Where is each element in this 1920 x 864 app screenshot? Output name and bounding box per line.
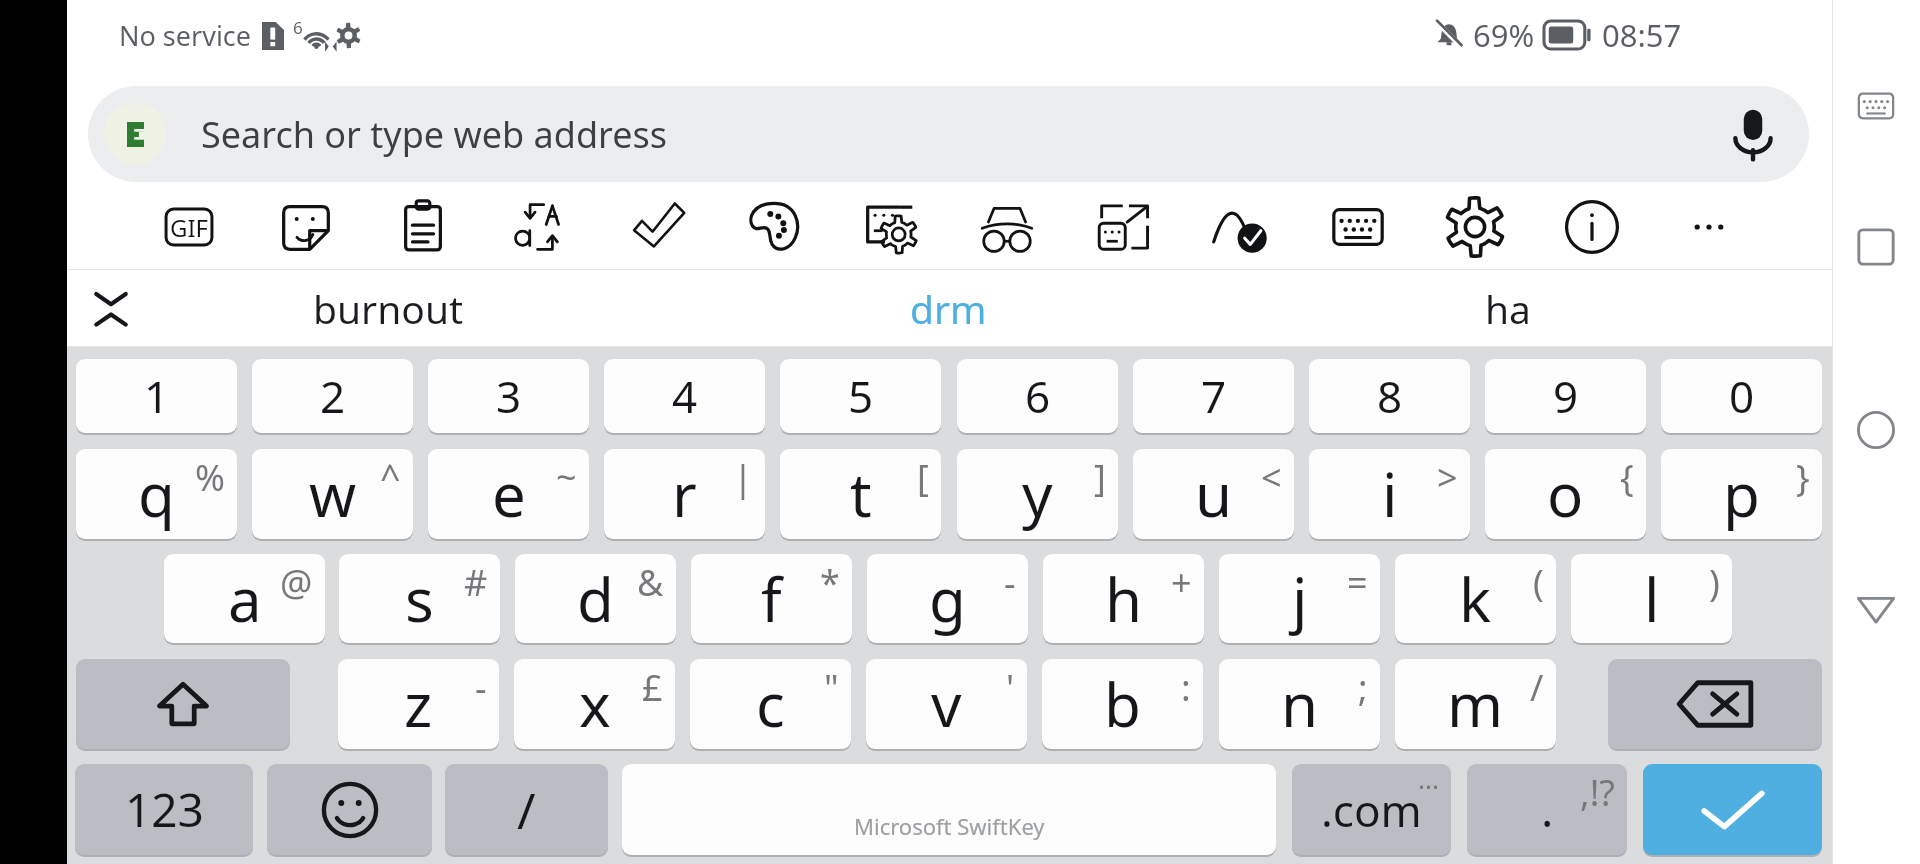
- button[interactable]: 6: [957, 359, 1118, 433]
- staticText: 123: [125, 778, 204, 841]
- staticText: ;: [1358, 663, 1368, 712]
- button[interactable]: Clipboard: [386, 183, 460, 270]
- button[interactable]: Translate: [503, 183, 577, 270]
- staticText: &: [637, 558, 664, 607]
- button[interactable]: o: [1485, 449, 1646, 539]
- button[interactable]: 5: [780, 359, 941, 433]
- button[interactable]: Stickers: [269, 183, 343, 270]
- button[interactable]: 7: [1133, 359, 1294, 433]
- button[interactable]: Collapse suggestions: [75, 270, 147, 347]
- button[interactable]: /: [445, 764, 608, 855]
- staticText: ): [1709, 558, 1720, 607]
- staticText: ···: [1418, 768, 1439, 803]
- staticText: -: [475, 663, 487, 712]
- button[interactable]: 0: [1661, 359, 1822, 433]
- button[interactable]: Handwriting: [1204, 183, 1278, 270]
- button[interactable]: m: [1395, 659, 1556, 749]
- button[interactable]: 1: [76, 359, 237, 433]
- staticText: l: [1644, 558, 1660, 640]
- staticText: burnout: [313, 282, 464, 335]
- button[interactable]: g: [867, 554, 1028, 643]
- button[interactable]: v: [866, 659, 1027, 749]
- button[interactable]: Search or type web address: [88, 86, 1809, 182]
- button[interactable]: More options: [1672, 183, 1746, 270]
- staticText: +: [1171, 558, 1192, 607]
- button[interactable]: Settings: [1438, 183, 1512, 270]
- button[interactable]: x: [514, 659, 675, 749]
- button[interactable]: p: [1661, 449, 1822, 539]
- staticText: d: [577, 558, 614, 640]
- staticText: w: [309, 453, 357, 535]
- staticText: 9: [1553, 366, 1579, 426]
- button[interactable]: 2: [252, 359, 413, 433]
- button[interactable]: r: [604, 449, 765, 539]
- button[interactable]: t: [780, 449, 941, 539]
- button[interactable]: 123: [75, 764, 253, 855]
- button[interactable]: .: [1467, 764, 1627, 855]
- button[interactable]: l: [1571, 554, 1732, 643]
- staticText: :: [1181, 663, 1191, 712]
- button[interactable]: n: [1219, 659, 1380, 749]
- staticText: /: [517, 776, 536, 844]
- button[interactable]: y: [957, 449, 1118, 539]
- button[interactable]: drm: [668, 270, 1228, 347]
- button[interactable]: u: [1133, 449, 1294, 539]
- button[interactable]: d: [515, 554, 676, 643]
- button[interactable]: Recents: [1839, 210, 1913, 284]
- staticText: m: [1447, 663, 1504, 745]
- staticText: r: [672, 453, 697, 535]
- staticText: 7: [1201, 366, 1227, 426]
- button[interactable]: 8: [1309, 359, 1470, 433]
- button[interactable]: Resize keyboard: [1087, 183, 1161, 270]
- staticText: 08:57: [1602, 14, 1682, 56]
- button[interactable]: h: [1043, 554, 1204, 643]
- button[interactable]: Space: [622, 764, 1276, 855]
- button[interactable]: Keyboard: [1839, 69, 1913, 143]
- button[interactable]: GIF: [152, 183, 226, 270]
- button[interactable]: z: [338, 659, 499, 749]
- button[interactable]: Shift: [76, 659, 290, 749]
- button[interactable]: k: [1395, 554, 1556, 643]
- button[interactable]: Emoji: [267, 764, 432, 855]
- button[interactable]: j: [1219, 554, 1380, 643]
- button[interactable]: 3: [428, 359, 589, 433]
- button[interactable]: a: [164, 554, 325, 643]
- staticText: <: [1261, 453, 1282, 502]
- button[interactable]: s: [339, 554, 500, 643]
- staticText: ^: [380, 453, 401, 502]
- button[interactable]: Voice search: [1723, 104, 1783, 164]
- staticText: ": [824, 663, 839, 712]
- button[interactable]: burnout: [108, 270, 668, 347]
- button[interactable]: 4: [604, 359, 765, 433]
- button[interactable]: i: [1309, 449, 1470, 539]
- staticText: .com: [1321, 780, 1422, 840]
- staticText: n: [1281, 663, 1319, 745]
- button[interactable]: .com: [1292, 764, 1451, 855]
- button[interactable]: e: [428, 449, 589, 539]
- staticText: GIF: [170, 211, 209, 244]
- button[interactable]: ha: [1228, 270, 1788, 347]
- button[interactable]: Theme: [737, 183, 811, 270]
- button[interactable]: Tasks: [620, 183, 694, 270]
- button[interactable]: Incognito: [970, 183, 1044, 270]
- staticText: £: [642, 663, 663, 712]
- staticText: ~: [556, 453, 577, 502]
- button[interactable]: Backspace: [1608, 659, 1822, 749]
- button[interactable]: Toolbox: [853, 183, 927, 270]
- staticText: c: [756, 663, 785, 745]
- button[interactable]: Home: [1839, 393, 1913, 467]
- button[interactable]: w: [252, 449, 413, 539]
- staticText: [: [917, 453, 929, 502]
- button[interactable]: Enter: [1643, 764, 1822, 855]
- button[interactable]: q: [76, 449, 237, 539]
- button[interactable]: c: [690, 659, 851, 749]
- button[interactable]: 9: [1485, 359, 1646, 433]
- button[interactable]: f: [691, 554, 852, 643]
- button[interactable]: Info: [1555, 183, 1629, 270]
- button[interactable]: Back: [1839, 571, 1913, 645]
- staticText: |: [733, 453, 753, 502]
- staticText: s: [405, 558, 434, 640]
- staticText: ': [1006, 663, 1015, 712]
- button[interactable]: b: [1042, 659, 1203, 749]
- button[interactable]: Keyboard layout: [1321, 183, 1395, 270]
